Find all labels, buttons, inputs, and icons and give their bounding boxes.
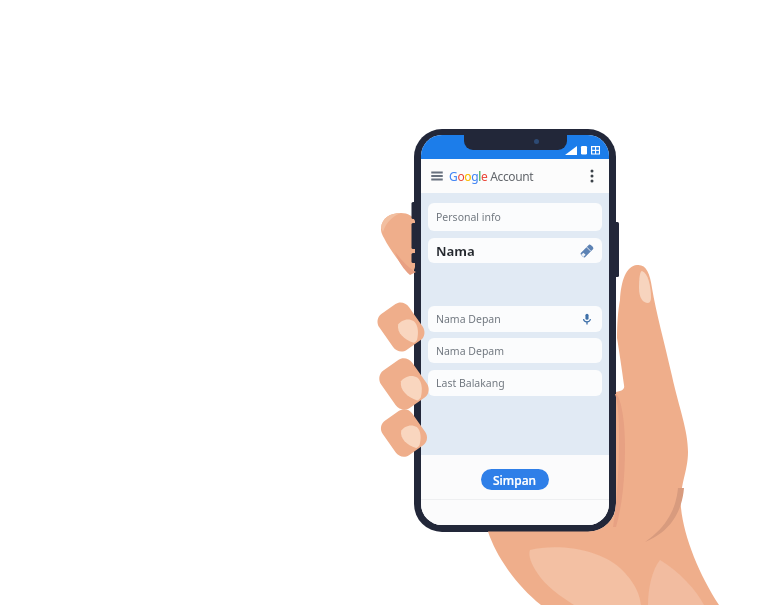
staticText: Simpan — [493, 472, 537, 488]
staticText: Google Account — [449, 168, 534, 184]
button[interactable]: Nama Depan — [428, 306, 602, 332]
button[interactable]: Nama — [428, 238, 602, 263]
staticText: Nama Depam — [436, 344, 505, 358]
button[interactable]: Last Balakang — [428, 370, 602, 396]
staticText: Nama Depan — [436, 312, 501, 326]
button[interactable]: Nama Depam — [428, 338, 602, 363]
button[interactable]: Menu — [426, 165, 448, 187]
staticText: Nama — [436, 242, 475, 260]
button[interactable]: More options — [584, 168, 600, 184]
staticText: Last Balakang — [436, 376, 505, 390]
button[interactable]: Simpan — [481, 469, 549, 490]
staticText: Personal info — [436, 210, 501, 224]
button[interactable]: Personal info — [428, 203, 602, 231]
